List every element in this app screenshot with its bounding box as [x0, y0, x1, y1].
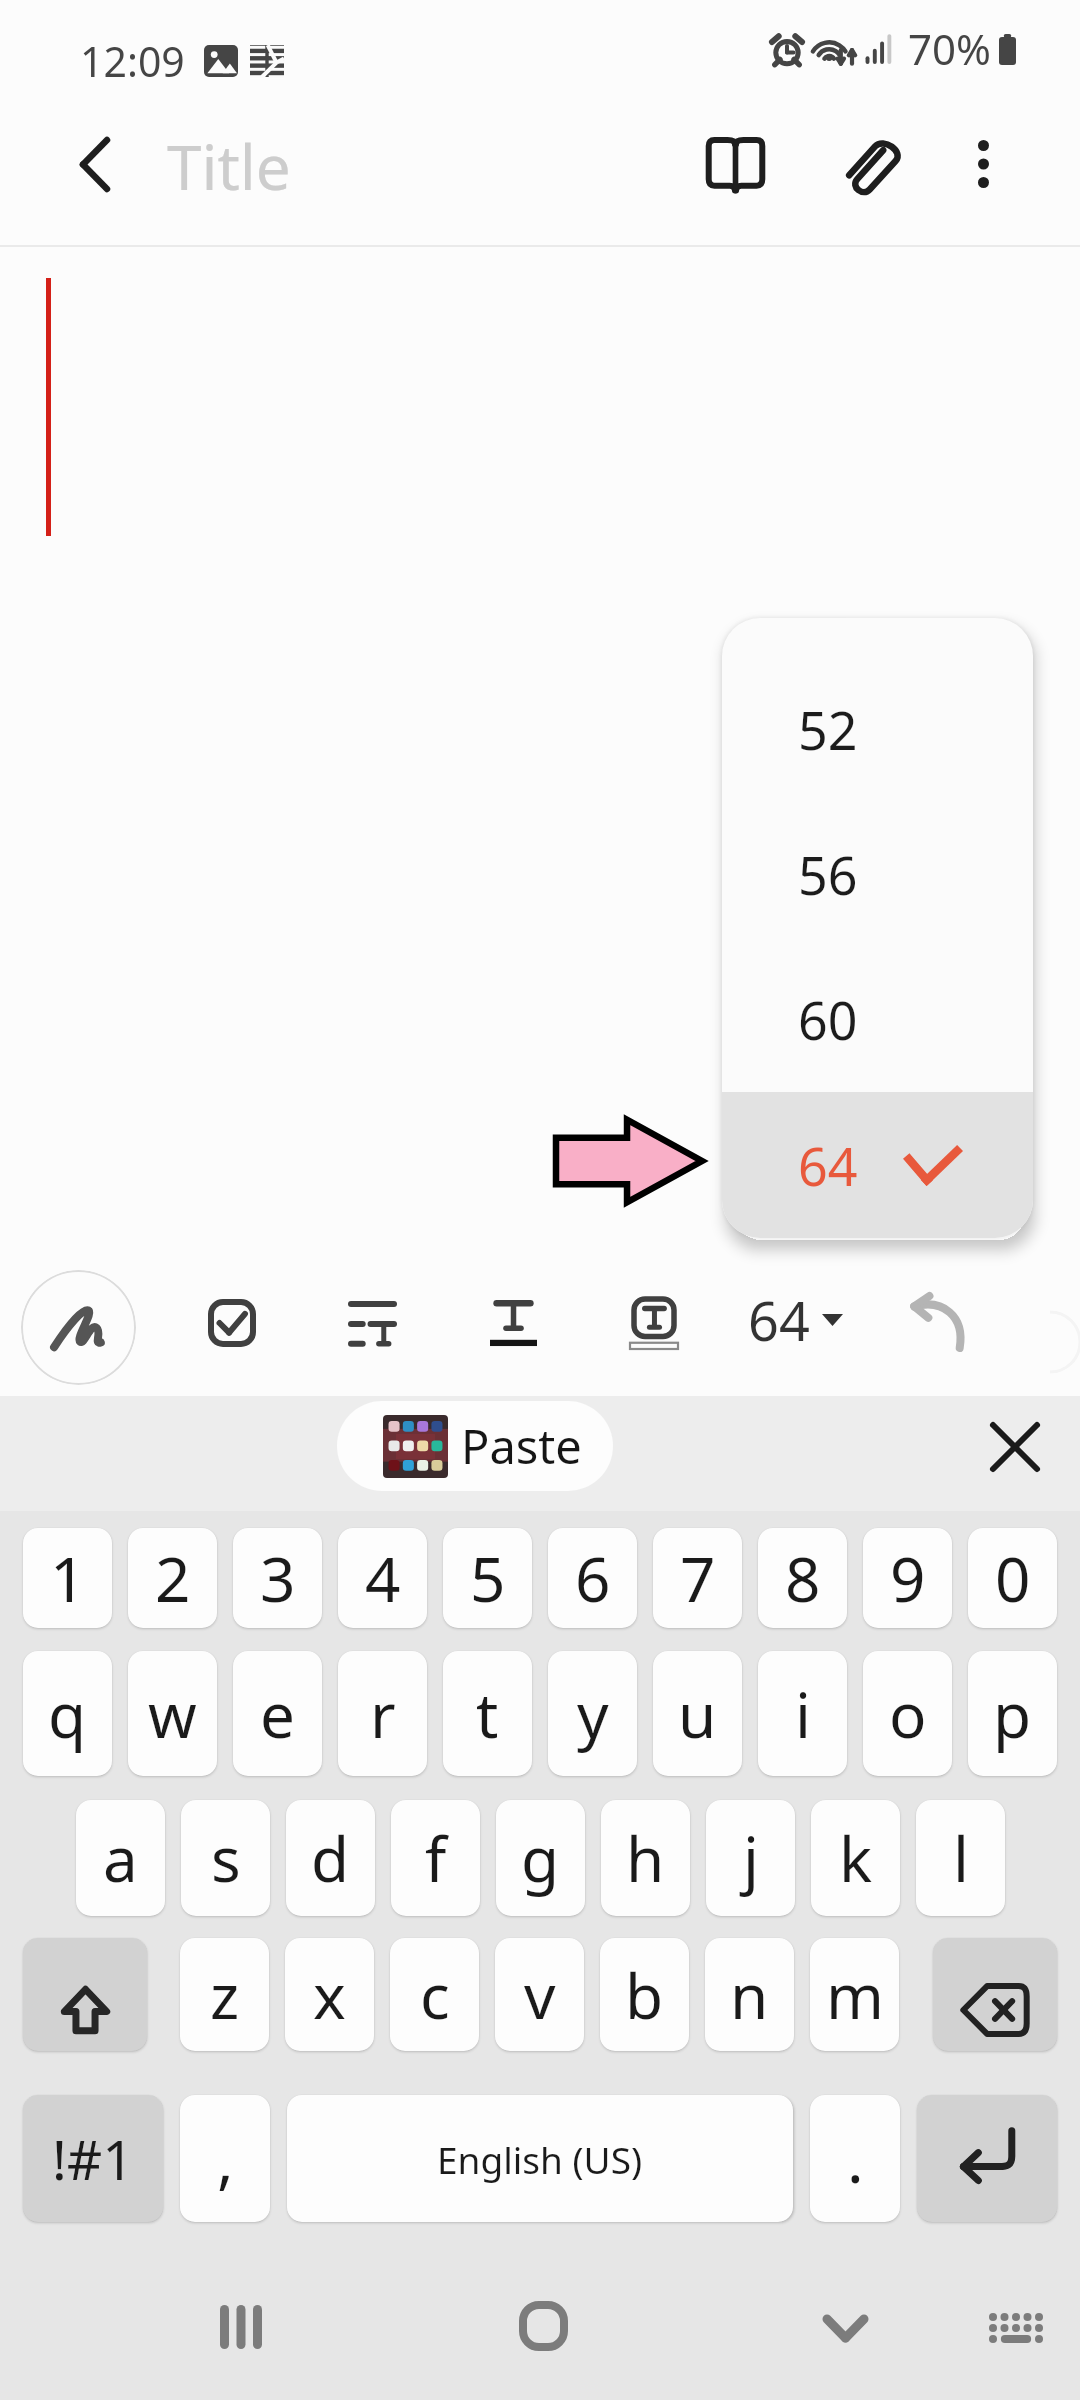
staticText: z — [210, 1953, 240, 2037]
staticText: g — [521, 1816, 560, 1900]
staticText: y — [577, 1672, 609, 1756]
button[interactable]: d — [286, 1800, 375, 1916]
button[interactable]: l — [916, 1800, 1005, 1916]
button[interactable]: Paragraph style — [336, 1287, 408, 1359]
button[interactable]: Backspace — [933, 1938, 1057, 2051]
button[interactable]: Handwriting — [21, 1270, 136, 1385]
button[interactable]: e — [233, 1651, 322, 1776]
staticText: . — [847, 2117, 864, 2201]
button[interactable]: t — [443, 1651, 532, 1776]
button[interactable]: Paste — [337, 1401, 613, 1491]
button[interactable]: 9 — [863, 1528, 952, 1628]
button[interactable]: Enter — [917, 2095, 1057, 2222]
button[interactable]: 1 — [23, 1528, 112, 1628]
button[interactable]: Navigate up — [49, 114, 141, 214]
button[interactable]: Reading mode — [690, 115, 780, 215]
button[interactable]: 7 — [653, 1528, 742, 1628]
staticText: n — [730, 1953, 769, 2037]
button[interactable]: j — [706, 1800, 795, 1916]
button[interactable]: 3 — [233, 1528, 322, 1628]
staticText: w — [148, 1672, 197, 1756]
button[interactable]: 52 — [722, 657, 1033, 802]
button[interactable]: r — [338, 1651, 427, 1776]
staticText: Paste — [461, 1414, 582, 1478]
staticText: j — [743, 1816, 759, 1900]
button[interactable]: 8 — [758, 1528, 847, 1628]
button[interactable]: h — [601, 1800, 690, 1916]
button[interactable]: v — [495, 1938, 584, 2051]
button[interactable]: Text style — [477, 1287, 549, 1359]
button[interactable]: q — [23, 1651, 112, 1776]
button[interactable]: Home — [463, 2246, 623, 2400]
staticText: 64 — [748, 1283, 810, 1357]
staticText: 64 — [798, 1130, 858, 1201]
button[interactable]: x — [285, 1938, 374, 2051]
button[interactable]: Text box — [618, 1287, 690, 1359]
staticText: h — [626, 1816, 665, 1900]
button[interactable]: p — [968, 1651, 1057, 1776]
staticText: t — [476, 1672, 499, 1756]
button[interactable]: 5 — [443, 1528, 532, 1628]
button[interactable]: m — [810, 1938, 899, 2051]
button[interactable]: n — [705, 1938, 794, 2051]
button[interactable]: !#1 — [23, 2095, 163, 2222]
button[interactable]: 64 — [740, 1272, 851, 1368]
button[interactable]: 6 — [548, 1528, 637, 1628]
staticText: !#1 — [52, 2121, 134, 2196]
button[interactable]: Attach file — [829, 114, 919, 214]
staticText: , — [217, 2117, 234, 2201]
button[interactable]: 4 — [338, 1528, 427, 1628]
button[interactable]: Hide keyboard — [765, 2248, 925, 2400]
button[interactable]: Shift — [23, 1938, 147, 2051]
button[interactable]: Change keyboard — [936, 2248, 1080, 2400]
button[interactable]: c — [390, 1938, 479, 2051]
staticText: 12:09 — [80, 33, 185, 89]
button[interactable]: s — [181, 1800, 270, 1916]
staticText: 56 — [798, 839, 858, 910]
button[interactable]: English (US) — [287, 2095, 793, 2222]
button[interactable]: Recents — [161, 2247, 321, 2400]
button[interactable]: . — [810, 2095, 900, 2222]
staticText: k — [839, 1816, 873, 1900]
staticText: d — [311, 1816, 350, 1900]
staticText: 8 — [785, 1536, 821, 1620]
staticText: English (US) — [437, 2134, 643, 2184]
button[interactable]: Undo — [896, 1274, 978, 1370]
staticText: e — [260, 1672, 295, 1756]
staticText: 7 — [680, 1536, 716, 1620]
staticText: 1 — [50, 1536, 86, 1620]
button[interactable]: More options — [944, 114, 1022, 214]
button[interactable]: 0 — [968, 1528, 1057, 1628]
staticText: 60 — [798, 984, 858, 1055]
button[interactable]: w — [128, 1651, 217, 1776]
staticText: s — [211, 1816, 241, 1900]
button[interactable]: 56 — [722, 802, 1033, 947]
staticText: c — [420, 1953, 450, 2037]
staticText: 4 — [365, 1536, 401, 1620]
staticText: Title — [167, 124, 291, 208]
button[interactable]: g — [496, 1800, 585, 1916]
staticText: 70% — [908, 20, 991, 77]
button[interactable]: y — [548, 1651, 637, 1776]
button[interactable]: u — [653, 1651, 742, 1776]
button[interactable]: 60 — [722, 947, 1033, 1092]
button[interactable]: 64 — [722, 1092, 1033, 1238]
staticText: 9 — [890, 1536, 926, 1620]
staticText: v — [524, 1953, 556, 2037]
button[interactable]: 2 — [128, 1528, 217, 1628]
button[interactable]: i — [758, 1651, 847, 1776]
staticText: 2 — [155, 1536, 191, 1620]
button[interactable]: k — [811, 1800, 900, 1916]
button[interactable]: z — [180, 1938, 269, 2051]
staticText: 52 — [798, 694, 858, 765]
button[interactable]: b — [600, 1938, 689, 2051]
button[interactable]: , — [180, 2095, 270, 2222]
staticText: q — [48, 1672, 87, 1756]
button[interactable]: Checklist — [196, 1287, 268, 1359]
button[interactable]: a — [76, 1800, 165, 1916]
button[interactable]: o — [863, 1651, 952, 1776]
staticText: b — [625, 1953, 664, 2037]
button[interactable]: Close clipboard suggestion — [973, 1405, 1057, 1489]
staticText: u — [678, 1672, 717, 1756]
button[interactable]: f — [391, 1800, 480, 1916]
